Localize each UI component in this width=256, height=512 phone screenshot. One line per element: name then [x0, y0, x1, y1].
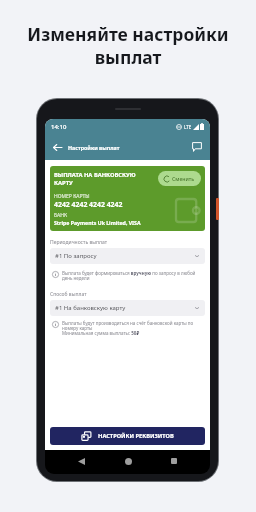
staticText: LTE [184, 124, 192, 130]
staticText: 14:10 [51, 123, 67, 131]
staticText: Выплаты будут производиться на счёт банк… [62, 320, 194, 337]
staticText: ВЫПЛАТА НА БАНКОВСКУЮ КАРТУ [54, 171, 158, 187]
staticText: Настройки выплат [68, 144, 120, 151]
staticText: Изменяйте настройки выплат [0, 22, 256, 69]
staticText: Выплата будет формироваться вручную по з… [62, 270, 196, 282]
staticText: #1 На банковскую карту [55, 304, 126, 312]
staticText: Сменить [172, 175, 195, 182]
staticText: 4242 4242 4242 4242 [54, 200, 123, 209]
button[interactable]: Home [118, 451, 138, 471]
button[interactable]: Back [50, 140, 64, 154]
button[interactable]: НАСТРОЙКИ РЕКВИЗИТОВ [50, 427, 205, 445]
button[interactable]: ВЫПЛАТА НА БАНКОВСКУЮ КАРТУ [50, 166, 205, 231]
button[interactable]: Back [71, 451, 91, 471]
button[interactable]: Recents [164, 451, 184, 471]
staticText: Stripe Payments Uk Limited, VISA [54, 219, 141, 226]
button[interactable]: #1 По запросу [50, 248, 205, 264]
staticText: БАНК [54, 212, 68, 219]
staticText: Способ выплат [50, 291, 87, 298]
button[interactable]: Сменить [158, 171, 201, 186]
button[interactable]: Chat [189, 139, 205, 155]
staticText: #1 По запросу [55, 252, 97, 260]
button[interactable]: #1 На банковскую карту [50, 300, 205, 316]
staticText: НОМЕР КАРТЫ [54, 193, 90, 200]
staticText: Периодичность выплат [50, 239, 108, 246]
staticText: НАСТРОЙКИ РЕКВИЗИТОВ [98, 432, 174, 440]
